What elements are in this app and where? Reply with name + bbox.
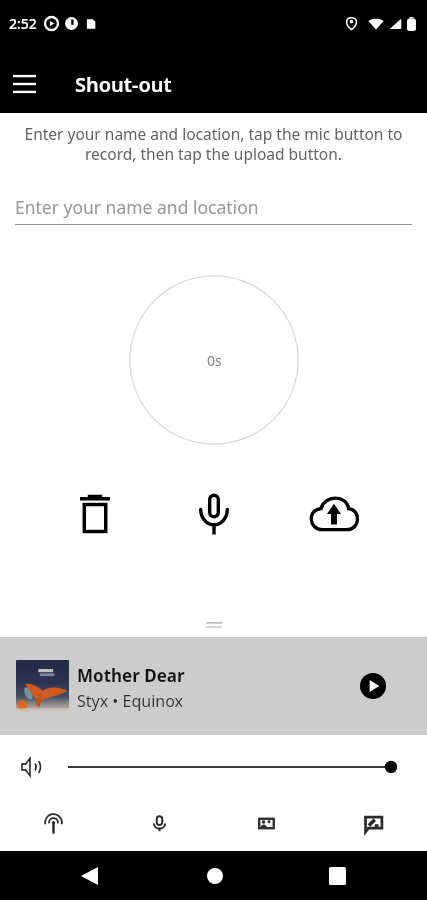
staticText: Enter your name and location	[15, 195, 259, 219]
button[interactable]: Menu	[0, 60, 48, 108]
button[interactable]: 0s	[129, 275, 299, 445]
staticText: Enter your name and location, tap the mi…	[12, 123, 415, 165]
button[interactable]: Screenshot	[213, 799, 320, 847]
button[interactable]	[68, 755, 397, 779]
staticText: Mother Dear	[77, 664, 185, 687]
button[interactable]: Mother Dear	[0, 637, 427, 735]
button[interactable]: Microphone	[106, 799, 213, 847]
staticText: 2:52	[9, 14, 37, 33]
staticText: 0s	[207, 351, 222, 370]
staticText: Shout-out	[75, 71, 172, 98]
button[interactable]: Markup	[320, 799, 427, 847]
button[interactable]: Cast	[0, 799, 106, 847]
button[interactable]: Recents	[313, 851, 362, 900]
button[interactable]: Home	[190, 851, 239, 900]
staticText: Styx • Equinox	[77, 690, 183, 712]
button[interactable]: Upload	[306, 486, 362, 542]
button[interactable]: Back	[65, 851, 114, 900]
button[interactable]: Play	[353, 666, 393, 706]
button[interactable]: Record	[186, 486, 242, 542]
button[interactable]: Delete	[67, 486, 123, 542]
